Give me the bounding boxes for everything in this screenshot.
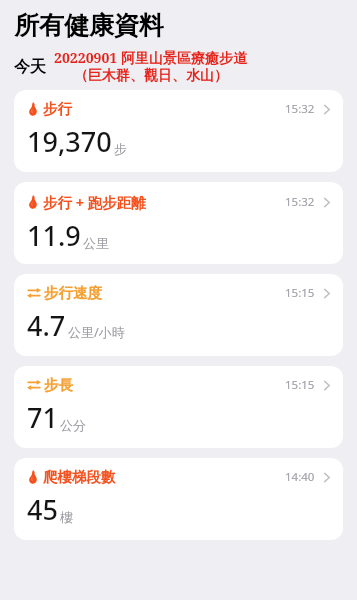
staticText: （巨木群、觀日、水山） <box>74 67 228 85</box>
staticText: 11.9 <box>27 217 81 254</box>
staticText: 45 <box>27 491 58 528</box>
staticText: 公分 <box>60 417 86 433</box>
staticText: 步行 <box>43 100 72 118</box>
staticText: 20220901 阿里山景區療癒步道 <box>54 48 247 67</box>
button[interactable]: 爬樓梯段數 45 樓 14:40 <box>14 458 343 540</box>
staticText: 步行速度 <box>44 284 102 302</box>
staticText: 今天 <box>14 57 46 77</box>
staticText: 19,370 <box>27 123 112 160</box>
button[interactable]: 步長 71 公分 15:15 <box>14 366 343 448</box>
staticText: 15:15 <box>285 377 315 393</box>
staticText: 公里 <box>83 235 109 251</box>
staticText: 步長 <box>44 376 73 394</box>
staticText: 爬樓梯段數 <box>43 468 116 486</box>
staticText: 71 <box>27 399 58 436</box>
staticText: 步行 + 跑步距離 <box>43 192 146 212</box>
staticText: 公里/小時 <box>68 323 125 341</box>
staticText: 14:40 <box>285 469 315 485</box>
staticText: 15:32 <box>285 101 315 117</box>
button[interactable]: 步行 19,370 步 15:32 <box>14 90 343 172</box>
staticText: 15:15 <box>285 285 315 301</box>
button[interactable]: 步行 + 跑步距離 11.9 公里 15:32 <box>14 182 343 264</box>
staticText: 4.7 <box>27 307 66 344</box>
staticText: 步 <box>114 141 127 157</box>
staticText: 15:32 <box>285 194 315 210</box>
staticText: 樓 <box>60 509 73 525</box>
button[interactable]: 步行速度 4.7 公里/小時 15:15 <box>14 274 343 356</box>
staticText: 所有健康資料 <box>14 10 164 41</box>
